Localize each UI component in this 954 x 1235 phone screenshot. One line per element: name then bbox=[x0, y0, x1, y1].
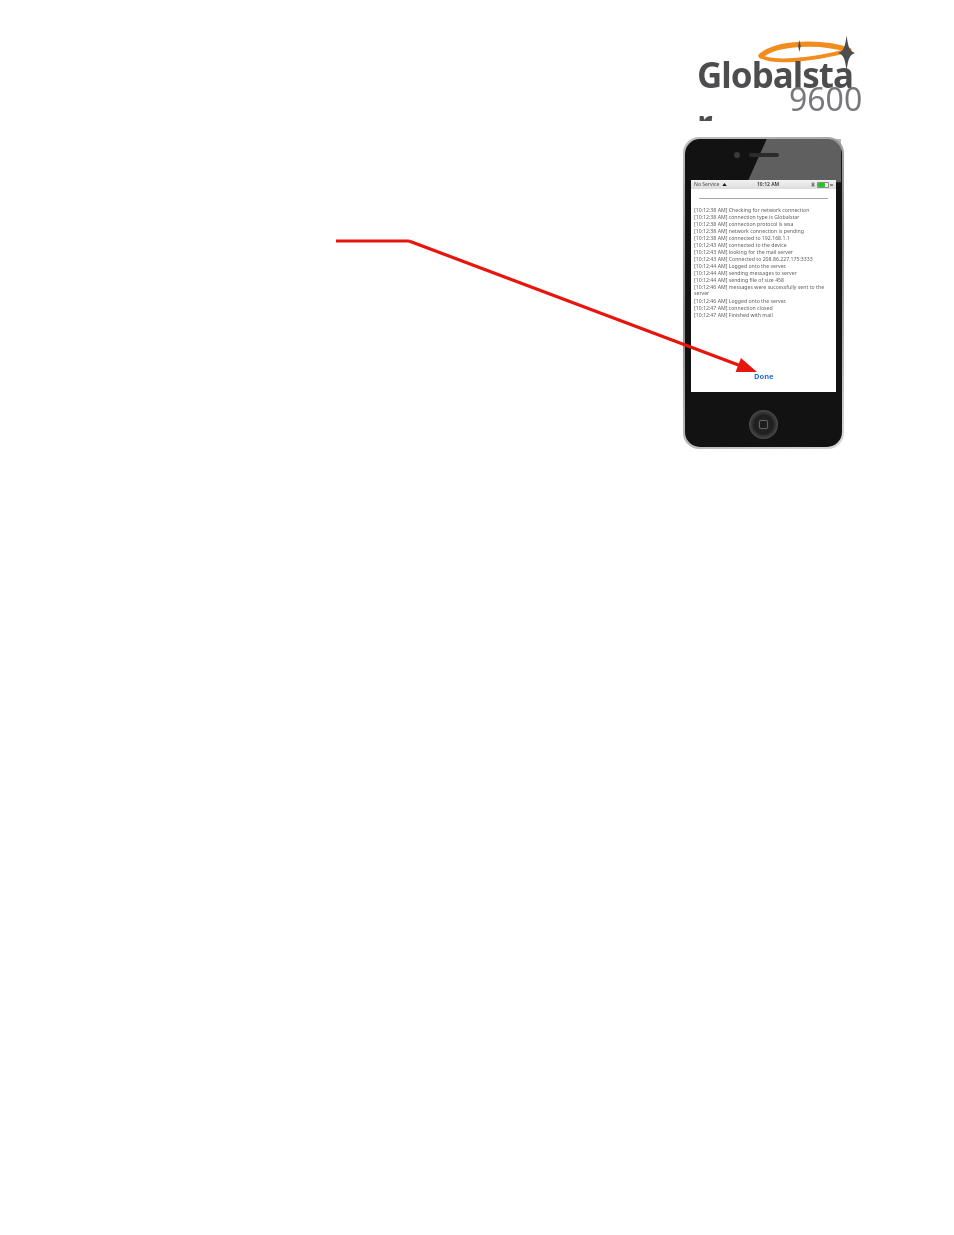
staticText: [10:12:38 AM] network connection is pend… bbox=[694, 227, 804, 234]
staticText: [10:12:38 AM] connected to 192.168.1.1 bbox=[694, 234, 790, 241]
staticText: [10:12:47 AM] connection closed bbox=[694, 304, 773, 311]
staticText: [10:12:46 AM] Logged onto the server. bbox=[694, 297, 787, 304]
staticText: Globalstar bbox=[697, 51, 857, 121]
staticText: [10:12:38 AM] connection protocol is wsa bbox=[694, 220, 794, 227]
staticText: [10:12:43 AM] Connected to 208.86.227.17… bbox=[694, 255, 813, 262]
staticText: [10:12:43 AM] connected to the device bbox=[694, 241, 787, 248]
staticText: 10:12 AM bbox=[757, 181, 780, 188]
staticText: [10:12:38 AM] Checking for network conne… bbox=[694, 206, 810, 213]
staticText: [10:12:44 AM] Logged onto the server. bbox=[694, 262, 787, 269]
staticText: [10:12:44 AM] sending file of size 458 bbox=[694, 276, 785, 283]
staticText: Done bbox=[754, 371, 774, 381]
button[interactable]: Done bbox=[691, 371, 836, 392]
staticText: [10:12:46 AM] messages were successfully… bbox=[694, 283, 833, 297]
button[interactable]: Home bbox=[749, 410, 778, 439]
staticText: [10:12:47 AM] Finished with mail bbox=[694, 311, 773, 318]
staticText: [10:12:38 AM] connection type is Globals… bbox=[694, 213, 800, 220]
staticText: [10:12:43 AM] looking for the mail serve… bbox=[694, 248, 793, 255]
staticText: No Service bbox=[694, 181, 720, 188]
staticText: 9600 bbox=[789, 77, 863, 121]
staticText: [10:12:44 AM] sending messages to server bbox=[694, 269, 797, 276]
